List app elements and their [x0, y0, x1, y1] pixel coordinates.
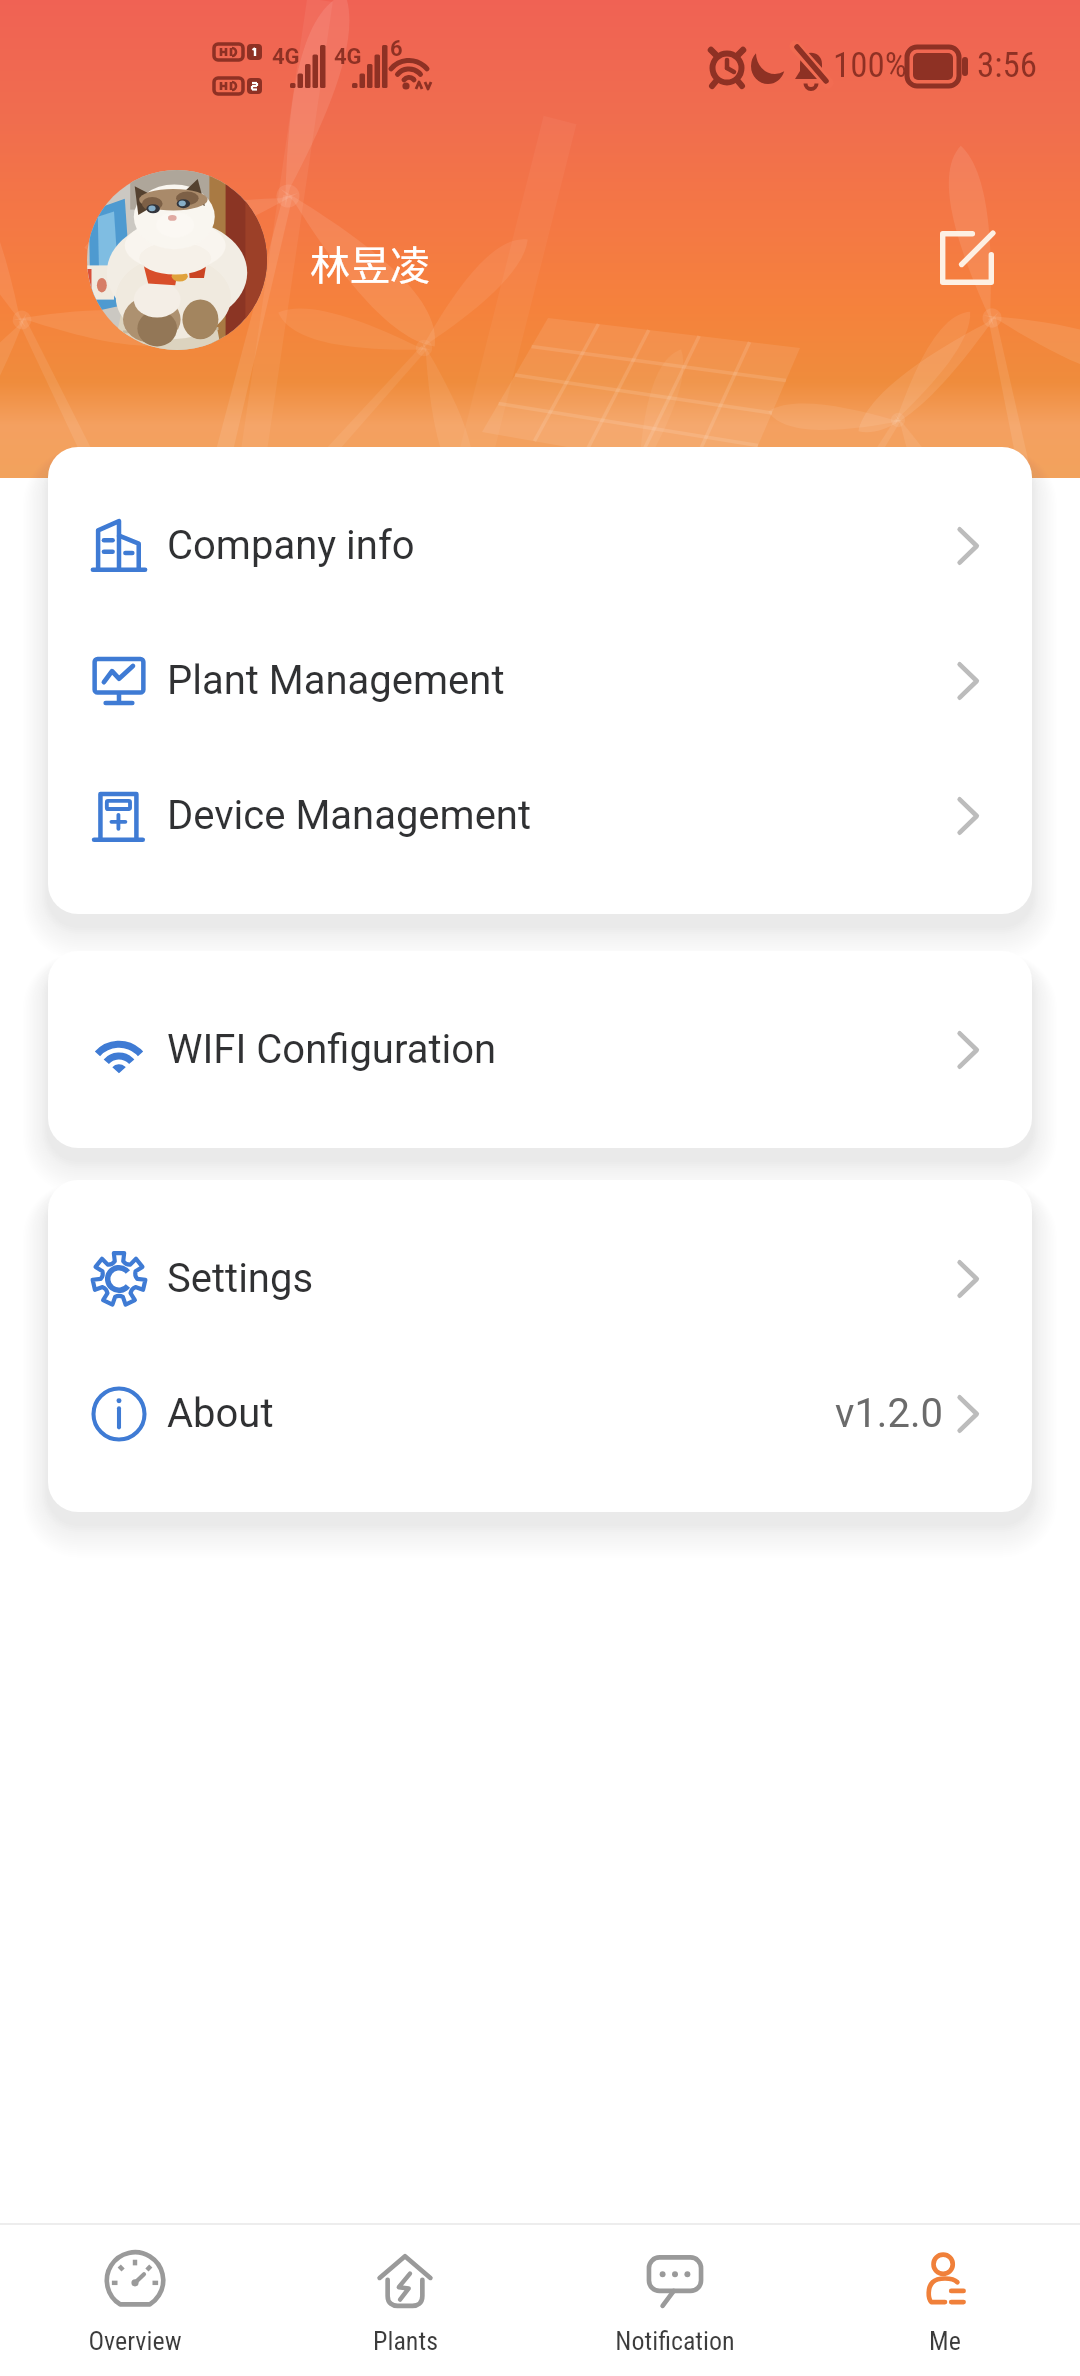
staticText: Notification — [615, 2326, 735, 2356]
staticText: Overview — [88, 2326, 182, 2356]
button[interactable]: About — [48, 1346, 1032, 1481]
staticText: Plants — [373, 2326, 438, 2356]
staticText: 4G — [272, 44, 300, 70]
staticText: 4G — [334, 44, 362, 70]
button[interactable]: Plants — [270, 2225, 540, 2376]
staticText: Plant Management — [167, 657, 505, 704]
staticText: 林昱凌 — [310, 234, 430, 292]
staticText: 3:56 — [977, 45, 1038, 86]
button[interactable]: Company info — [48, 478, 1032, 613]
staticText: WIFI Configuration — [167, 1026, 497, 1073]
staticText: Device Management — [167, 792, 532, 839]
button[interactable]: WIFI Configuration — [48, 982, 1032, 1117]
button[interactable]: Edit profile — [919, 210, 1015, 306]
staticText: Me — [929, 2326, 961, 2356]
button[interactable]: Settings — [48, 1211, 1032, 1346]
staticText: About — [167, 1390, 274, 1437]
staticText: v1.2.0 — [835, 1390, 943, 1437]
staticText: Settings — [167, 1255, 314, 1302]
staticText: 6 — [390, 36, 403, 62]
button[interactable]: Device Management — [48, 748, 1032, 883]
button[interactable]: Profile photo — [87, 170, 267, 350]
button[interactable]: Me — [810, 2225, 1080, 2376]
staticText: Company info — [167, 522, 415, 569]
button[interactable]: Plant Management — [48, 613, 1032, 748]
button[interactable]: Overview — [0, 2225, 270, 2376]
button[interactable]: Notification — [540, 2225, 810, 2376]
staticText: 100% — [833, 45, 907, 86]
